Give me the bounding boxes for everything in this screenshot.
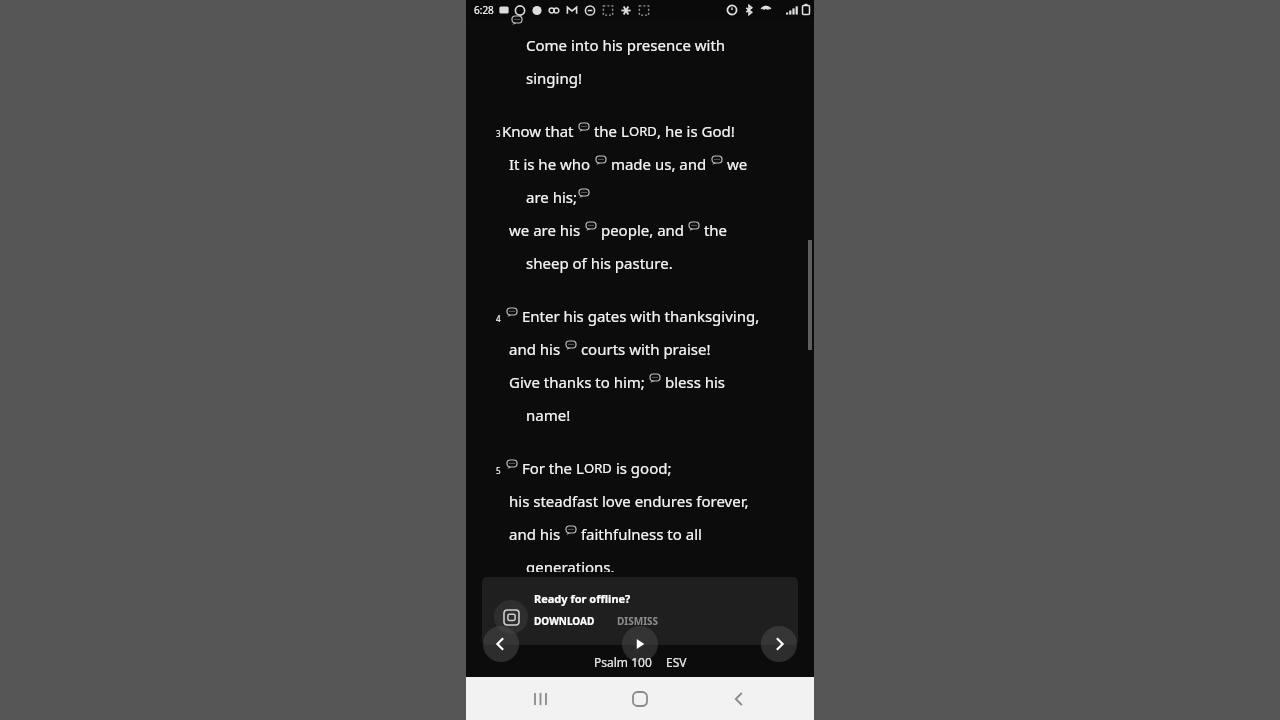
button[interactable]: Footnote xyxy=(579,189,589,198)
staticText: we are his xyxy=(509,220,585,240)
staticText: and his xyxy=(509,339,565,359)
button[interactable]: Psalm 100 xyxy=(594,654,652,670)
button[interactable]: Previous chapter xyxy=(483,626,519,662)
button[interactable]: Footnote xyxy=(507,460,517,469)
button[interactable]: Footnote xyxy=(586,222,596,231)
button[interactable]: Footnote xyxy=(566,526,576,535)
staticText: ESV xyxy=(666,654,687,670)
staticText: bless his xyxy=(661,372,726,392)
button[interactable]: Home xyxy=(616,677,664,720)
staticText: courts with praise! xyxy=(577,339,711,359)
button[interactable]: Footnote xyxy=(650,374,660,383)
staticText: Give thanks to him; xyxy=(509,372,649,392)
staticText: 3 xyxy=(496,128,501,139)
staticText: It is he who xyxy=(509,154,595,174)
button[interactable]: DOWNLOAD xyxy=(534,614,595,628)
staticText: people, and xyxy=(597,220,688,240)
button[interactable]: Recent apps xyxy=(517,677,565,720)
staticText: ORD xyxy=(629,122,657,140)
button[interactable]: Footnote xyxy=(712,156,722,165)
button[interactable]: Footnote xyxy=(689,222,699,231)
button[interactable]: Footnote xyxy=(566,341,576,350)
staticText: 6:28 xyxy=(474,3,494,17)
staticText: DISMISS xyxy=(617,614,659,628)
staticText: 5 xyxy=(496,465,501,476)
button[interactable]: Offline xyxy=(494,600,528,634)
staticText: Ready for offline? xyxy=(534,591,631,606)
button[interactable]: Next chapter xyxy=(761,626,797,662)
button[interactable]: Footnote xyxy=(579,123,589,132)
button[interactable]: Footnote xyxy=(507,308,517,317)
button[interactable]: DISMISS xyxy=(617,614,659,628)
staticText: is good; xyxy=(612,458,672,478)
staticText: made us, and xyxy=(607,154,711,174)
staticText: faithfulness to all xyxy=(577,524,702,544)
staticText: For the xyxy=(518,458,576,478)
staticText: Psalm 100 xyxy=(594,654,652,670)
staticText: singing! xyxy=(526,68,582,88)
button[interactable]: ESV xyxy=(666,654,687,670)
staticText: DOWNLOAD xyxy=(534,614,595,628)
button[interactable]: Footnote xyxy=(596,156,606,165)
staticText: generations. xyxy=(526,557,615,572)
staticText: we xyxy=(723,154,748,174)
staticText: L xyxy=(576,458,584,478)
button[interactable]: Back xyxy=(715,677,763,720)
staticText: 4 xyxy=(496,313,501,324)
staticText: L xyxy=(621,121,629,141)
staticText: , he is God! xyxy=(657,121,735,141)
staticText: name! xyxy=(526,405,571,425)
button[interactable]: Play audio xyxy=(622,626,658,662)
staticText: the xyxy=(700,220,728,240)
staticText: are his; xyxy=(526,187,578,207)
staticText: and his xyxy=(509,524,565,544)
staticText: Enter his gates with thanksgiving, xyxy=(518,306,760,326)
staticText: Know that xyxy=(502,121,578,141)
staticText: the xyxy=(590,121,621,141)
staticText: Come into his presence with xyxy=(526,35,726,55)
staticText: ORD xyxy=(584,459,612,477)
staticText: sheep of his pasture. xyxy=(526,253,673,273)
staticText: his steadfast love endures forever, xyxy=(509,491,749,511)
